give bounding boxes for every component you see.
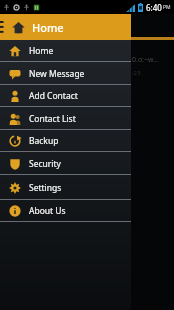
staticText: Backup (29, 135, 59, 147)
staticText: New Message (29, 68, 85, 80)
button[interactable]: About Us (0, 200, 131, 222)
staticText: Security (29, 158, 61, 170)
button[interactable]: Home (0, 40, 131, 62)
staticText: Contact List (29, 113, 76, 125)
staticText: About Us (29, 205, 66, 217)
staticText: Home (32, 20, 64, 35)
button[interactable]: Settings (0, 175, 131, 200)
staticText: Settings (29, 182, 62, 194)
staticText: :23 (132, 69, 141, 77)
button[interactable]: Open navigation menu, Home (0, 14, 131, 40)
button[interactable]: Security (0, 152, 131, 175)
staticText: Home (29, 45, 54, 57)
staticText: 0.o:~w... (132, 55, 159, 65)
button[interactable]: Backup (0, 130, 131, 152)
staticText: PM (163, 4, 171, 11)
button[interactable]: Add Contact (0, 85, 131, 107)
staticText: 6:40 (146, 2, 162, 13)
staticText: Add Contact (29, 90, 78, 102)
button[interactable]: Contact List (0, 107, 131, 130)
button[interactable]: New Message (0, 62, 131, 85)
